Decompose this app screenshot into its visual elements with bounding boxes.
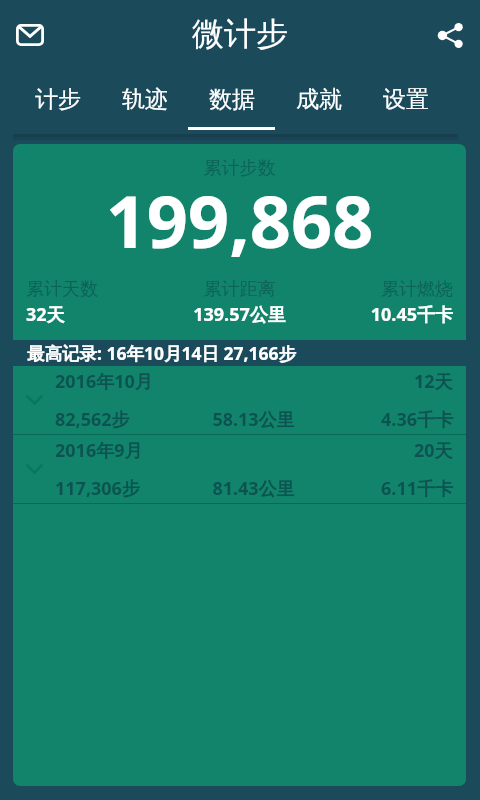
staticText: 成就 [296,85,342,114]
staticText: 117,306步 [55,476,187,501]
staticText: 81.43公里 [187,476,320,501]
staticText: 2016年9月 [55,438,143,463]
staticText: 设置 [383,85,429,114]
staticText: 82,562步 [55,407,187,432]
staticText: 20天 [414,438,453,463]
staticText: 计步 [35,85,81,114]
staticText: 最高记录: 16年10月14日 27,166步 [27,341,297,365]
button[interactable]: 2016年9月 [13,435,466,504]
button[interactable]: Share [426,11,474,59]
staticText: 数据 [209,85,255,114]
staticText: 轨迹 [122,85,168,114]
button[interactable]: 计步 [14,70,101,133]
staticText: 2016年10月 [55,369,153,394]
staticText: 微计步 [192,14,288,54]
staticText: 累计天数 [26,278,151,301]
staticText: 12天 [414,369,453,394]
staticText: 4.36千卡 [320,407,453,432]
button[interactable]: Messages [6,11,54,59]
staticText: 139.57公里 [177,302,302,326]
button[interactable]: 2016年10月 [13,366,466,435]
button[interactable]: 成就 [275,70,362,133]
staticText: 累计燃烧 [328,278,453,301]
staticText: 累计距离 [177,278,302,301]
staticText: 199,868 [13,171,466,269]
staticText: 累计步数 [13,157,466,180]
staticText: 6.11千卡 [320,476,453,501]
staticText: 32天 [26,302,151,326]
button[interactable]: 设置 [362,70,449,133]
button[interactable]: 数据 [188,70,275,133]
staticText: 10.45千卡 [328,302,453,326]
button[interactable]: 轨迹 [101,70,188,133]
staticText: 58.13公里 [187,407,320,432]
